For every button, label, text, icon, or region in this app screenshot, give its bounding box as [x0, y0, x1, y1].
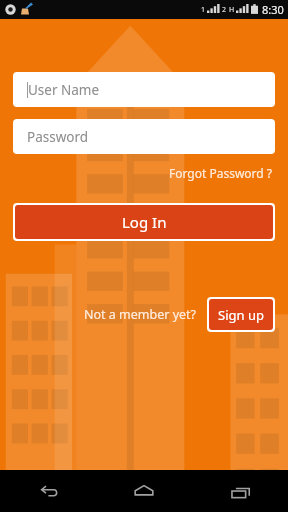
button[interactable]: Recent apps	[212, 470, 268, 512]
button[interactable]: Sign up	[209, 299, 273, 330]
button[interactable]: Forgot Password ?	[167, 163, 275, 183]
button[interactable]: Back	[20, 470, 76, 512]
staticText: Password	[27, 128, 89, 146]
staticText: User Name	[28, 81, 100, 99]
button[interactable]: Home	[116, 470, 172, 512]
staticText: Sign up	[218, 306, 264, 324]
staticText: Log In	[122, 212, 167, 232]
staticText: Not a member yet?	[84, 306, 197, 323]
staticText: 2	[222, 5, 227, 15]
staticText: 8:30	[262, 2, 284, 17]
staticText: 1	[201, 5, 206, 15]
button[interactable]: User Name	[13, 72, 275, 107]
staticText: H	[229, 5, 235, 15]
button[interactable]: Password	[13, 119, 275, 154]
button[interactable]: Log In	[15, 205, 273, 239]
staticText: Forgot Password ?	[169, 165, 273, 181]
